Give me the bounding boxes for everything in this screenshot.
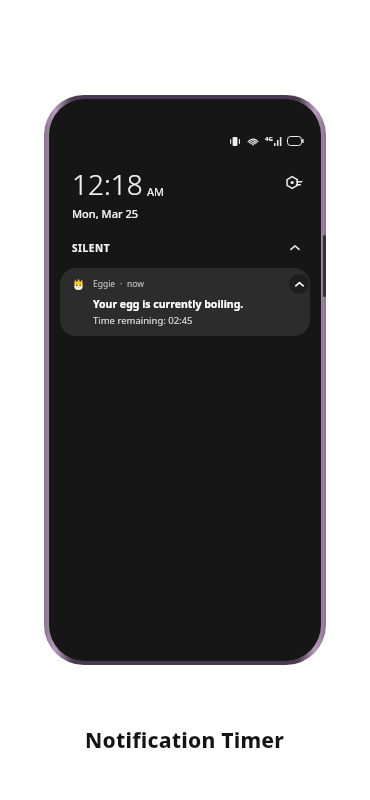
staticText: now xyxy=(127,278,144,290)
button[interactable]: Eggie xyxy=(60,268,310,336)
button[interactable]: Collapse notification xyxy=(289,274,309,294)
staticText: · xyxy=(120,278,123,290)
staticText: 4G xyxy=(265,135,273,143)
staticText: Notification Timer xyxy=(85,726,285,755)
staticText: Mon, Mar 25 xyxy=(72,206,139,221)
staticText: Your egg is currently boiling. xyxy=(93,297,244,311)
staticText: SILENT xyxy=(72,241,111,255)
staticText: Time remaining: 02:45 xyxy=(93,314,193,327)
button[interactable]: Privacy settings xyxy=(282,171,304,193)
staticText: 12:18 xyxy=(72,165,143,203)
staticText: Eggie xyxy=(93,278,116,290)
button[interactable]: SILENT xyxy=(49,236,321,260)
staticText: AM xyxy=(147,184,165,199)
